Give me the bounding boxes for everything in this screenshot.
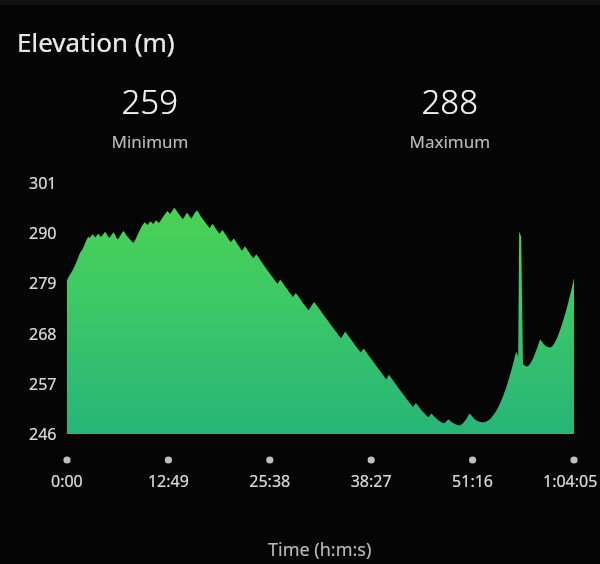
button[interactable]: Elevation chart <box>0 0 600 564</box>
button[interactable]: Elevation profile graph <box>0 0 507 251</box>
